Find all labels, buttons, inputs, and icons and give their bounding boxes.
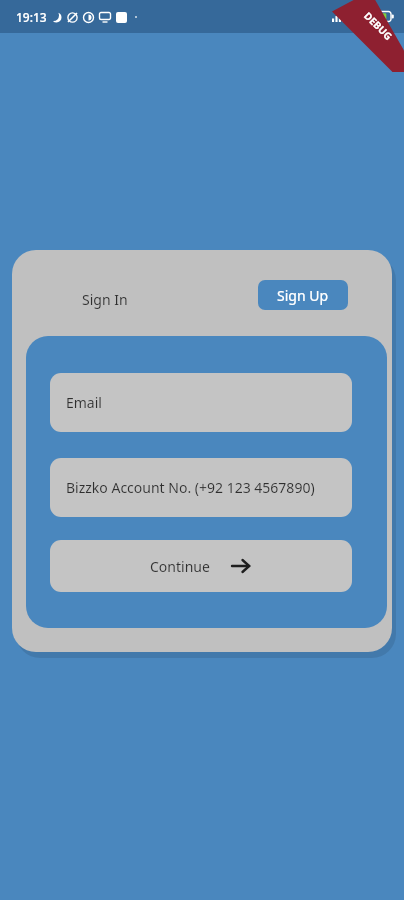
staticText: 19:13	[16, 9, 47, 25]
staticText: Email	[66, 393, 102, 412]
staticText: Bizzko Account No. (+92 123 4567890)	[66, 478, 315, 497]
button[interactable]: Bizzko Account No. (+92 123 4567890)	[50, 458, 352, 517]
staticText: Continue	[150, 557, 210, 576]
staticText: Sign Up	[277, 286, 329, 305]
button[interactable]: Sign In	[72, 282, 138, 317]
button[interactable]: Sign Up	[258, 280, 348, 310]
staticText: Sign In	[82, 290, 128, 309]
button[interactable]: Continue	[50, 540, 352, 592]
button[interactable]: Email	[50, 373, 352, 432]
staticText: DEBUG	[361, 9, 396, 43]
